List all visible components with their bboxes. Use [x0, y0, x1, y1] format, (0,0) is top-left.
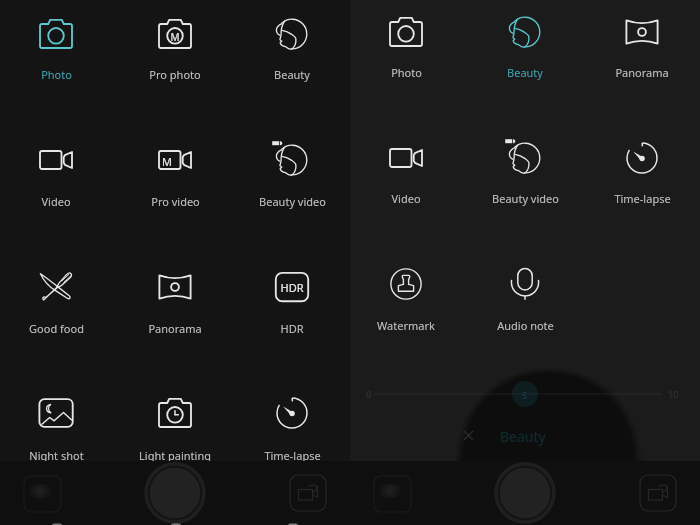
staticText: Beauty video: [259, 194, 326, 209]
button[interactable]: Beauty: [467, 6, 583, 82]
button[interactable]: Good food: [0, 261, 114, 338]
staticText: M: [170, 30, 180, 44]
staticText: Panorama: [148, 321, 202, 336]
button[interactable]: Video: [348, 132, 464, 208]
staticText: Video: [391, 191, 421, 206]
staticText: M: [162, 154, 172, 169]
button[interactable]: Beauty: [234, 8, 350, 84]
button[interactable]: HDR: [234, 261, 350, 338]
staticText: Time-lapse: [264, 448, 321, 463]
staticText: Video: [41, 194, 71, 209]
button[interactable]: Shutter: [494, 462, 556, 524]
staticText: 5: [522, 389, 528, 401]
staticText: Audio note: [497, 318, 554, 333]
button[interactable]: Video: [0, 134, 114, 211]
staticText: 0: [366, 388, 372, 400]
button[interactable]: Photo: [348, 6, 464, 82]
button[interactable]: Panorama: [117, 261, 233, 338]
button[interactable]: Gallery: [24, 476, 61, 512]
staticText: Light painting: [139, 448, 211, 463]
staticText: Panorama: [615, 65, 669, 80]
button[interactable]: Light painting: [117, 387, 233, 465]
staticText: Beauty video: [492, 191, 559, 206]
button[interactable]: Time-lapse: [584, 132, 700, 208]
staticText: Beauty: [274, 67, 310, 82]
button[interactable]: Night shot: [0, 387, 114, 465]
button[interactable]: Shutter: [144, 462, 206, 524]
button[interactable]: Time-lapse: [234, 387, 350, 465]
staticText: Time-lapse: [614, 191, 671, 206]
button[interactable]: Photo: [0, 8, 114, 84]
button[interactable]: Beauty video: [467, 132, 583, 208]
staticText: Watermark: [377, 318, 435, 333]
staticText: Pro video: [151, 194, 200, 209]
button[interactable]: Watermark: [348, 258, 464, 335]
button[interactable]: Switch camera: [640, 475, 676, 511]
staticText: Pro photo: [149, 67, 201, 82]
staticText: Beauty: [500, 427, 546, 446]
button[interactable]: Beauty video: [234, 134, 350, 211]
button[interactable]: M: [117, 134, 233, 211]
staticText: Beauty: [507, 65, 543, 80]
staticText: Night shot: [29, 448, 84, 463]
button[interactable]: Panorama: [584, 6, 700, 82]
staticText: 10: [668, 388, 679, 400]
button[interactable]: Gallery: [374, 476, 411, 512]
staticText: HDR: [280, 321, 304, 336]
button[interactable]: Switch camera: [290, 475, 326, 511]
staticText: HDR: [280, 280, 304, 295]
staticText: Photo: [391, 65, 422, 80]
button[interactable]: M: [117, 8, 233, 84]
staticText: Good food: [29, 321, 84, 336]
button[interactable]: Audio note: [467, 258, 583, 335]
staticText: Photo: [41, 67, 72, 82]
